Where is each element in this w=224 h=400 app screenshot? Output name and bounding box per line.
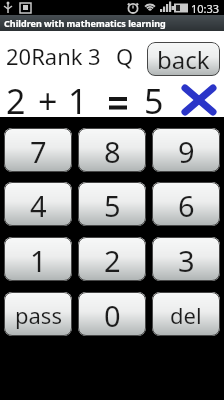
staticText: pass — [15, 300, 62, 330]
button[interactable]: pass — [4, 292, 72, 336]
staticText: back — [157, 43, 210, 76]
staticText: 1 — [68, 78, 88, 124]
staticText: Children with mathematics learning — [4, 17, 166, 29]
button[interactable]: 1 — [4, 237, 72, 281]
staticText: Q — [116, 41, 134, 71]
staticText: 2 — [104, 241, 121, 280]
button[interactable]: del — [152, 292, 220, 336]
staticText: 5 — [104, 186, 121, 225]
button[interactable]: back — [147, 42, 220, 76]
button[interactable]: 3 — [152, 237, 220, 281]
staticText: 4 — [30, 186, 47, 225]
button[interactable]: 8 — [78, 128, 146, 172]
staticText: + — [38, 78, 58, 124]
staticText: 3 — [178, 241, 195, 280]
staticText: 1 — [30, 241, 47, 280]
button[interactable]: 4 — [4, 182, 72, 226]
button[interactable]: 6 — [152, 182, 220, 226]
staticText: 0 — [104, 296, 121, 335]
staticText: 2 — [6, 78, 26, 124]
staticText: 7 — [30, 132, 47, 171]
staticText: 10:33 — [191, 1, 220, 16]
staticText: 9 — [178, 132, 195, 171]
staticText: del — [170, 300, 202, 330]
button[interactable]: 7 — [4, 128, 72, 172]
staticText: 3 — [88, 41, 101, 71]
staticText: 20Rank — [6, 41, 83, 71]
staticText: 8 — [104, 132, 121, 171]
button[interactable]: 9 — [152, 128, 220, 172]
button[interactable]: 5 — [78, 182, 146, 226]
button[interactable]: 0 — [78, 292, 146, 336]
staticText: 6 — [178, 186, 195, 225]
button[interactable]: 2 — [78, 237, 146, 281]
staticText: 5 — [144, 78, 164, 124]
